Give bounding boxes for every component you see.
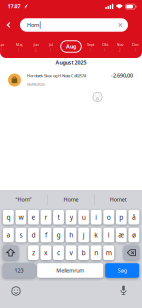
staticText: Jun: [33, 42, 38, 47]
button[interactable]: Nov: [112, 40, 127, 53]
staticText: z: [32, 248, 35, 257]
button[interactable]: s: [15, 228, 26, 242]
staticText: 2: [119, 49, 121, 52]
staticText: k: [94, 231, 98, 239]
staticText: ø: [132, 231, 136, 239]
button[interactable]: Jun: [28, 40, 43, 53]
staticText: m: [106, 248, 112, 257]
staticText: Aug: [66, 43, 76, 50]
button[interactable]: z: [28, 245, 39, 260]
button[interactable]: Hornbæk Skov og H Nota Cd02574: [0, 69, 142, 91]
staticText: r: [45, 213, 48, 222]
button[interactable]: v: [66, 245, 76, 260]
staticText: 1: [104, 49, 106, 52]
staticText: “Horn”: [16, 196, 32, 203]
button[interactable]: Sept: [83, 40, 98, 53]
button[interactable]: d: [28, 228, 39, 242]
button[interactable]: Jul: [43, 40, 58, 53]
staticText: Maj: [15, 42, 22, 47]
staticText: b: [82, 248, 86, 257]
staticText: x: [44, 248, 48, 257]
button[interactable]: o: [103, 210, 114, 224]
staticText: g: [57, 231, 61, 239]
staticText: 17.07: [7, 3, 20, 10]
staticText: 1: [134, 49, 136, 52]
button[interactable]: Dec: [128, 40, 142, 53]
button[interactable]: u: [78, 210, 89, 224]
staticText: Dec: [132, 42, 139, 47]
button[interactable]: Okt: [97, 40, 112, 53]
button[interactable]: Dictation: [118, 284, 128, 295]
staticText: 1: [18, 49, 20, 52]
staticText: Nov: [116, 42, 123, 47]
staticText: Horn: [27, 21, 39, 29]
staticText: t: [58, 213, 60, 222]
staticText: q: [6, 213, 10, 222]
staticText: 123: [15, 267, 24, 274]
staticText: August 2025: [55, 59, 86, 66]
staticText: -2.690,00: [111, 72, 133, 79]
button[interactable]: m: [103, 245, 114, 260]
staticText: f: [45, 231, 47, 239]
button[interactable]: Maj: [11, 40, 26, 53]
staticText: i: [95, 213, 97, 222]
staticText: l: [108, 231, 110, 239]
button[interactable]: Aug: [59, 39, 83, 53]
staticText: Horne: [63, 196, 78, 203]
staticText: j: [83, 231, 85, 239]
staticText: Okt: [102, 42, 108, 47]
button[interactable]: x: [40, 245, 51, 260]
staticText: a: [6, 231, 10, 239]
button[interactable]: Hornet: [96, 191, 140, 207]
button[interactable]: b: [78, 245, 89, 260]
button[interactable]: ø: [128, 228, 139, 242]
staticText: v: [70, 248, 73, 257]
button[interactable]: i: [91, 210, 102, 224]
button[interactable]: f: [41, 228, 51, 242]
staticText: 2: [35, 49, 37, 52]
button[interactable]: Shift: [3, 245, 18, 260]
staticText: 1: [50, 49, 52, 52]
button[interactable]: æ: [116, 228, 127, 242]
button[interactable]: 123: [3, 263, 35, 278]
button[interactable]: c: [53, 245, 64, 260]
staticText: c: [57, 248, 60, 257]
button[interactable]: q: [3, 210, 14, 224]
button[interactable]: p: [116, 210, 127, 224]
button[interactable]: k: [91, 228, 102, 242]
staticText: Hornet: [110, 196, 127, 203]
button[interactable]: Apr: [0, 40, 9, 53]
button[interactable]: w: [15, 210, 26, 224]
staticText: p: [119, 213, 123, 222]
button[interactable]: j: [78, 228, 89, 242]
button[interactable]: t: [53, 210, 64, 224]
staticText: 06/08/2025: [27, 82, 45, 87]
staticText: 1: [0, 49, 2, 52]
button[interactable]: Søg: [105, 263, 139, 278]
staticText: å: [132, 213, 136, 222]
staticText: n: [94, 248, 98, 257]
button[interactable]: Clear text: [118, 22, 123, 28]
staticText: s: [19, 231, 22, 239]
button[interactable]: a: [3, 228, 14, 242]
button[interactable]: g: [53, 228, 64, 242]
staticText: h: [69, 231, 73, 239]
button[interactable]: l: [103, 228, 114, 242]
button[interactable]: h: [66, 228, 77, 242]
staticText: Apr: [0, 42, 5, 47]
button[interactable]: r: [41, 210, 51, 224]
button[interactable]: Horne: [49, 191, 93, 207]
button[interactable]: Back: [6, 22, 11, 28]
button[interactable]: “Horn”: [2, 191, 46, 207]
button[interactable]: n: [91, 245, 102, 260]
button[interactable]: Emoji: [11, 286, 21, 296]
button[interactable]: å: [128, 210, 139, 224]
staticText: d: [31, 231, 35, 239]
button[interactable]: Delete: [124, 245, 139, 260]
button[interactable]: e: [28, 210, 39, 224]
button[interactable]: y: [66, 210, 77, 224]
staticText: æ: [118, 231, 124, 239]
button[interactable]: Mellemrum: [37, 263, 103, 278]
staticText: u: [82, 213, 86, 222]
staticText: Sept: [87, 42, 94, 47]
